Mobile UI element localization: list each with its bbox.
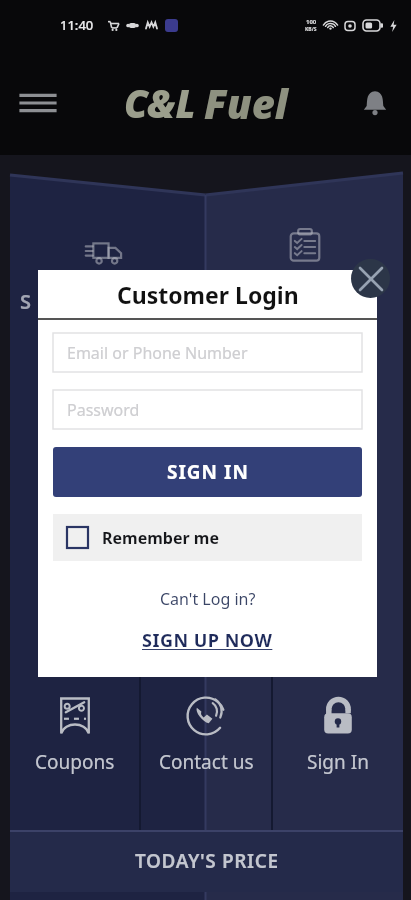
button[interactable]: Open navigation menu — [12, 77, 64, 129]
button[interactable]: Close — [351, 259, 390, 298]
button[interactable]: Sign In — [273, 675, 403, 830]
staticText: Password — [67, 399, 140, 421]
button[interactable]: SIGN UP NOW — [38, 628, 377, 653]
staticText: KB/S — [305, 26, 317, 33]
staticText: Coupons — [35, 749, 115, 775]
button[interactable]: Email or Phone Number — [53, 333, 362, 372]
button[interactable]: TODAY'S PRICE — [10, 830, 403, 892]
button[interactable]: SIGN IN — [53, 447, 362, 497]
staticText: S — [20, 288, 31, 315]
staticText: Contact us — [159, 749, 254, 775]
button[interactable]: Can't Log in? — [38, 588, 377, 610]
button[interactable]: Password — [53, 390, 362, 429]
staticText: SIGN UP NOW — [142, 628, 273, 653]
staticText: Sign In — [307, 749, 369, 775]
staticText: 100 — [306, 18, 317, 26]
button[interactable]: Coupons — [10, 675, 139, 830]
button[interactable]: Remember me — [53, 514, 362, 561]
staticText: C&L — [124, 77, 196, 129]
staticText: Remember me — [102, 527, 219, 549]
staticText: Fuel — [204, 76, 288, 130]
staticText: Customer Login — [117, 279, 299, 310]
staticText: TODAY'S PRICE — [135, 848, 279, 874]
staticText: Can't Log in? — [160, 588, 256, 610]
staticText: Email or Phone Number — [67, 342, 248, 364]
staticText: SIGN IN — [167, 459, 249, 485]
button[interactable]: Notifications — [351, 79, 399, 127]
button[interactable]: Contact us — [141, 675, 271, 830]
staticText: 11:40 — [60, 16, 94, 34]
